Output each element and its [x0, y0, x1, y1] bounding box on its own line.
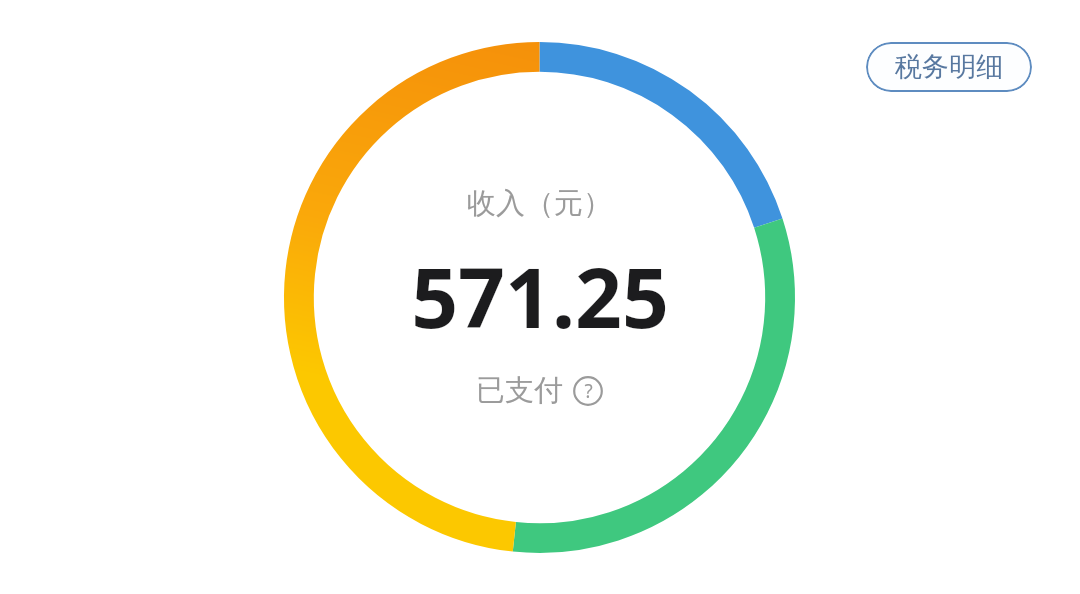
button[interactable]: 税务明细	[866, 42, 1032, 92]
other: 帮助说明	[573, 376, 603, 406]
staticText: 收入（元）	[467, 185, 612, 222]
staticText: ?	[584, 378, 593, 404]
button[interactable]: 已支付	[472, 370, 607, 411]
staticText: 已支付	[476, 372, 563, 409]
staticText: 571.25	[411, 240, 669, 352]
staticText: 税务明细	[895, 50, 1003, 84]
